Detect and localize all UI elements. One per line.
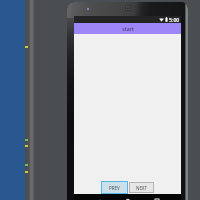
staticText: PREV (109, 185, 120, 191)
button[interactable]: PREV (102, 182, 127, 193)
button[interactable]: Back (94, 196, 103, 200)
button[interactable]: NEXT (130, 183, 153, 192)
button[interactable]: Recents (152, 196, 161, 200)
button[interactable]: start (74, 23, 181, 34)
staticText: start (122, 25, 134, 32)
staticText: NEXT (136, 185, 148, 191)
staticText: 5:00 (169, 16, 180, 23)
button[interactable]: Home (123, 196, 132, 200)
